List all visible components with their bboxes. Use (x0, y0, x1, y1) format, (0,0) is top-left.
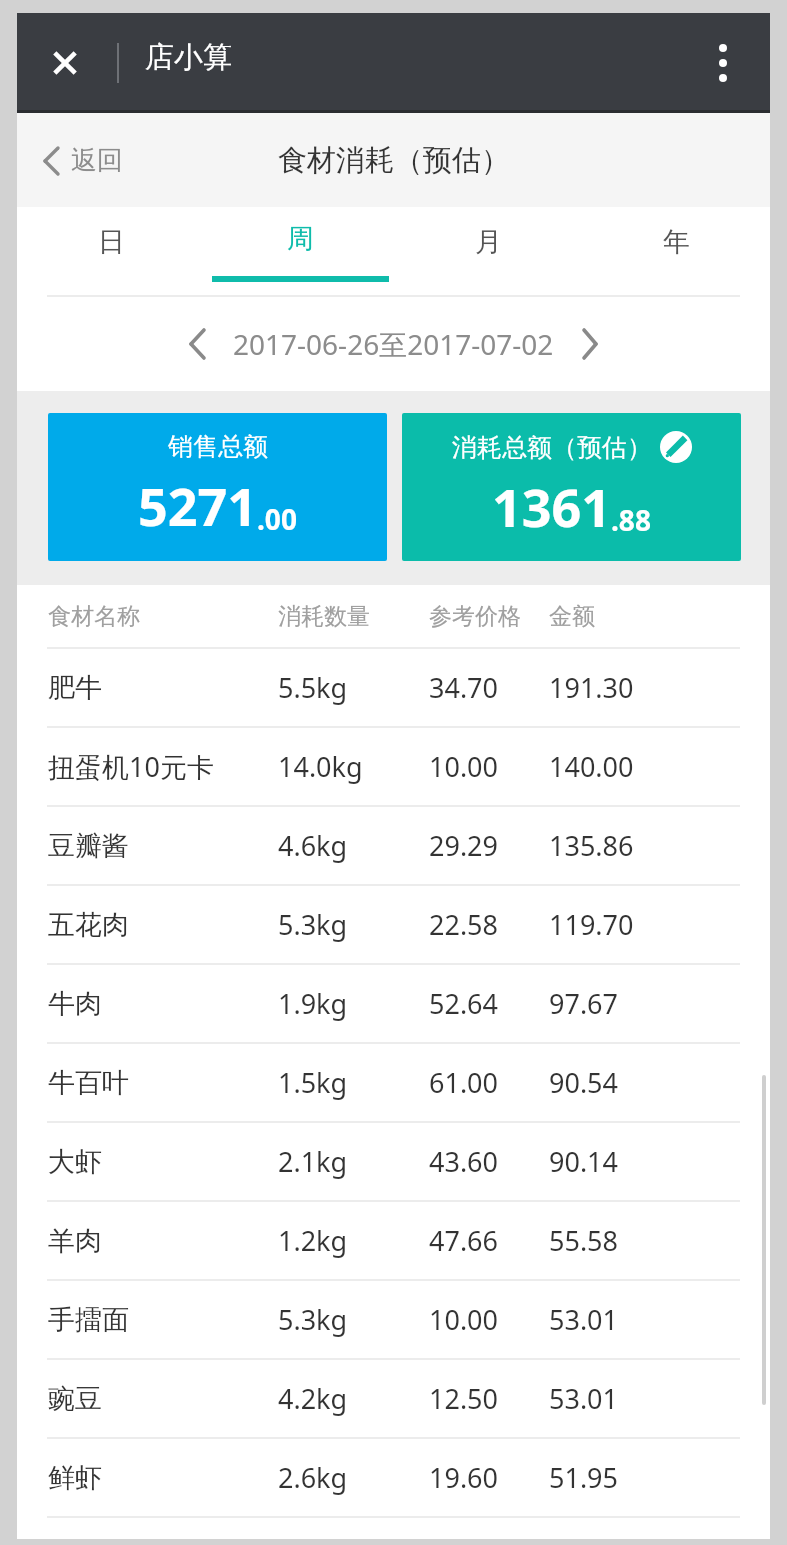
staticText: 52.64 (429, 985, 499, 1022)
button[interactable]: 牛肉 (17, 965, 770, 1042)
staticText: 参考价格 (429, 602, 521, 631)
staticText: 食材消耗（预估） (278, 142, 510, 179)
staticText: 53.01 (549, 1380, 619, 1417)
button[interactable]: 周 (206, 207, 394, 297)
staticText: 19.60 (429, 1459, 499, 1496)
staticText: 55.58 (549, 1222, 619, 1259)
staticText: 1.2kg (278, 1222, 348, 1259)
staticText: 5.5kg (278, 669, 348, 706)
staticText: 140.00 (549, 748, 634, 785)
button[interactable]: 豆瓣酱 (17, 807, 770, 884)
staticText: 牛肉 (48, 987, 102, 1021)
staticText: 5.3kg (278, 1301, 348, 1338)
button[interactable]: 返回 (43, 144, 123, 177)
staticText: 1.9kg (278, 985, 348, 1022)
staticText: 34.70 (429, 669, 499, 706)
button[interactable]: 羊肉 (17, 1202, 770, 1279)
staticText: 月 (475, 225, 502, 259)
button[interactable]: 手擂面 (17, 1281, 770, 1358)
staticText: 10.00 (429, 748, 499, 785)
staticText: 周 (287, 222, 314, 256)
staticText: 五花肉 (48, 908, 129, 942)
staticText: 29.29 (429, 827, 499, 864)
staticText: 金额 (549, 602, 595, 631)
button[interactable]: 日 (17, 207, 206, 297)
staticText: 返回 (71, 144, 123, 177)
staticText: 年 (663, 225, 690, 259)
staticText: 羊肉 (48, 1224, 102, 1258)
staticText: 4.2kg (278, 1380, 348, 1417)
staticText: 53.01 (549, 1301, 619, 1338)
staticText: 食材名称 (48, 602, 140, 631)
staticText: 10.00 (429, 1301, 499, 1338)
staticText: 119.70 (549, 906, 634, 943)
staticText: 51.95 (549, 1459, 619, 1496)
button[interactable]: Next period (560, 314, 620, 374)
staticText: 43.60 (429, 1143, 499, 1180)
staticText: 大虾 (48, 1145, 102, 1179)
staticText: 135.86 (549, 827, 634, 864)
button[interactable]: 豌豆 (17, 1360, 770, 1437)
button[interactable]: Edit (660, 431, 692, 463)
button[interactable]: 月 (394, 207, 582, 297)
staticText: 牛百叶 (48, 1066, 129, 1100)
staticText: 日 (98, 225, 125, 259)
staticText: .00 (257, 500, 297, 538)
staticText: 扭蛋机10元卡 (48, 748, 214, 785)
staticText: 12.50 (429, 1380, 499, 1417)
staticText: 4.6kg (278, 827, 348, 864)
staticText: 肥牛 (48, 671, 102, 705)
button[interactable]: 年 (582, 207, 770, 297)
staticText: 61.00 (429, 1064, 499, 1101)
staticText: 1361 (492, 471, 611, 542)
button[interactable]: 扭蛋机10元卡 (17, 728, 770, 805)
staticText: 5.3kg (278, 906, 348, 943)
button[interactable]: 大虾 (17, 1123, 770, 1200)
button[interactable]: 鲜虾 (17, 1439, 770, 1516)
staticText: 97.67 (549, 985, 619, 1022)
button[interactable]: Close (41, 39, 89, 87)
staticText: 90.54 (549, 1064, 619, 1101)
button[interactable]: 五花肉 (17, 886, 770, 963)
button[interactable]: Previous period (167, 314, 227, 374)
staticText: 销售总额 (168, 431, 268, 462)
staticText: 47.66 (429, 1222, 499, 1259)
staticText: 鲜虾 (48, 1461, 102, 1495)
staticText: 2.6kg (278, 1459, 348, 1496)
staticText: .88 (611, 501, 651, 539)
staticText: 店小算 (145, 39, 232, 76)
staticText: 2.1kg (278, 1143, 348, 1180)
staticText: 1.5kg (278, 1064, 348, 1101)
button[interactable]: 消耗总额（预估） (402, 413, 741, 561)
staticText: 14.0kg (278, 748, 363, 785)
staticText: 豆瓣酱 (48, 829, 129, 863)
staticText: 消耗总额（预估） (452, 432, 652, 463)
staticText: 22.58 (429, 906, 499, 943)
staticText: 消耗数量 (278, 602, 370, 631)
staticText: 2017-06-26至2017-07-02 (233, 325, 554, 363)
staticText: 90.14 (549, 1143, 619, 1180)
button[interactable]: 肥牛 (17, 649, 770, 726)
button[interactable]: 牛百叶 (17, 1044, 770, 1121)
staticText: 5271 (138, 470, 257, 541)
staticText: 191.30 (549, 669, 634, 706)
staticText: 豌豆 (48, 1382, 102, 1416)
button[interactable]: 销售总额 (48, 413, 387, 561)
staticText: 手擂面 (48, 1303, 129, 1337)
button[interactable]: More options (695, 35, 751, 91)
